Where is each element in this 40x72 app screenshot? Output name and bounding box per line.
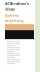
staticText: Al Ibrahim's ideas xyxy=(5,1,29,11)
staticText: Ask me anything xyxy=(5,12,24,23)
